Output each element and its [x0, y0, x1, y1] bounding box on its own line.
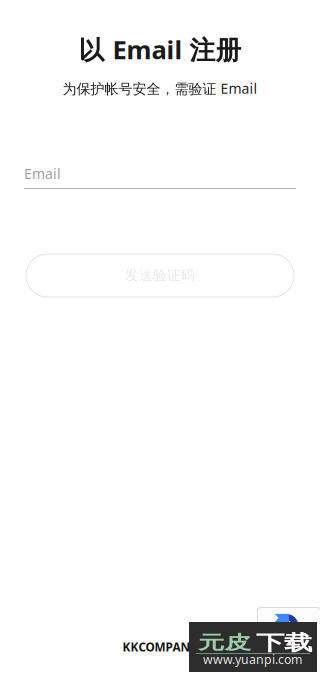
button[interactable]: 发送验证码	[26, 254, 294, 297]
staticText: 以 Email 注册	[78, 32, 241, 67]
staticText: 元皮	[198, 631, 238, 656]
staticText: 为保护帐号安全，需验证 Email	[62, 79, 257, 98]
staticText: www.yuanpi.com	[203, 651, 302, 668]
staticText: 发送验证码	[125, 267, 195, 284]
staticText: KKCOMPANY	[122, 639, 197, 655]
staticText: Email	[24, 164, 61, 183]
staticText: 下载	[256, 630, 302, 659]
